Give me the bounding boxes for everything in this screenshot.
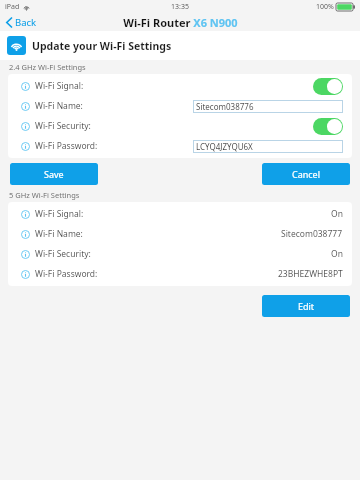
staticText: 2.4 GHz Wi-Fi Settings [9,62,86,72]
staticText: Save [44,168,64,180]
staticText: Back [15,16,37,29]
staticText: On [331,208,343,220]
button[interactable]: Wi-Fi Password: [8,136,352,156]
button[interactable]: Save [10,163,98,185]
button[interactable]: Wi-Fi Name: [8,224,352,244]
button[interactable]: Sitecom038776 [193,100,343,113]
staticText: Wi-Fi Router X6 N900 [123,15,238,30]
staticText: Wi-Fi Signal: [35,208,84,220]
staticText: Wi-Fi Password: [35,268,98,280]
staticText: Update your Wi-Fi Settings [32,39,172,53]
staticText: 5 GHz Wi-Fi Settings [9,190,80,200]
staticText: 23BHEZWHE8PT [278,268,343,280]
staticText: 100% [316,2,334,12]
button[interactable]: Wi-Fi Signal: [8,204,352,224]
button[interactable]: Back [0,14,45,31]
button[interactable]: Wi-Fi Password: [8,264,352,284]
staticText: Wi-Fi Security: [35,248,91,260]
button[interactable]: Wi-Fi Name: [8,96,352,116]
button[interactable]: Cancel [262,163,350,185]
staticText: Sitecom038777 [281,228,343,240]
staticText: Sitecom038776 [196,101,254,112]
staticText: Wi-Fi Name: [35,100,83,112]
staticText: On [331,248,343,260]
staticText: Wi-Fi Password: [35,140,98,152]
button[interactable]: Toggle [313,118,343,135]
staticText: iPad [5,2,20,12]
staticText: Wi-Fi Signal: [35,80,84,92]
button[interactable]: Edit [262,295,350,317]
staticText: 13:35 [171,2,189,12]
button[interactable]: Wi-Fi Security: [8,116,352,136]
staticText: Edit [298,300,315,312]
button[interactable]: LCYQ4JZYQU6X [193,140,343,153]
staticText: Wi-Fi Security: [35,120,91,132]
button[interactable]: Wi-Fi Signal: [8,76,352,96]
button[interactable]: Wi-Fi Security: [8,244,352,264]
staticText: LCYQ4JZYQU6X [196,141,253,152]
staticText: Cancel [292,168,321,180]
button[interactable]: Toggle [313,78,343,95]
staticText: Wi-Fi Name: [35,228,83,240]
